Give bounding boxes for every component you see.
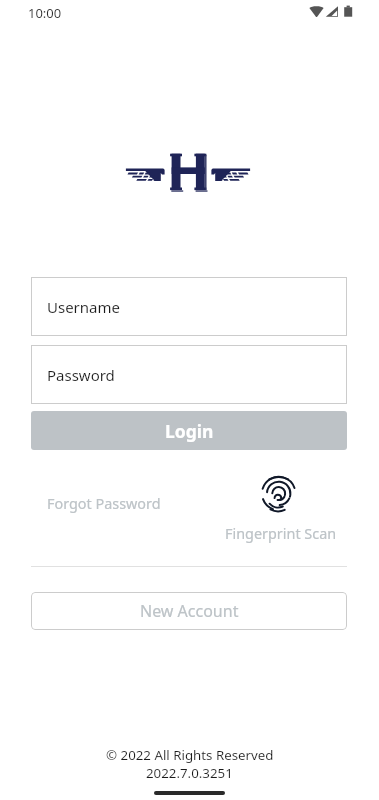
button[interactable]: Forgot Password [31, 487, 176, 521]
button[interactable]: Username [31, 277, 347, 336]
button[interactable]: Password [31, 345, 347, 404]
staticText: © 2022 All Rights Reserved [106, 746, 274, 764]
staticText: New Account [140, 600, 239, 622]
button[interactable]: Fingerprint Scan [218, 468, 342, 550]
staticText: Fingerprint Scan [225, 524, 337, 544]
staticText: Password [47, 365, 115, 385]
button[interactable]: New Account [31, 592, 347, 630]
staticText: 2022.7.0.3251 [146, 764, 233, 782]
staticText: Login [165, 419, 214, 443]
staticText: Username [47, 297, 120, 317]
staticText: 10:00 [28, 4, 62, 22]
button[interactable]: Login [31, 411, 347, 450]
staticText: Forgot Password [47, 494, 161, 514]
